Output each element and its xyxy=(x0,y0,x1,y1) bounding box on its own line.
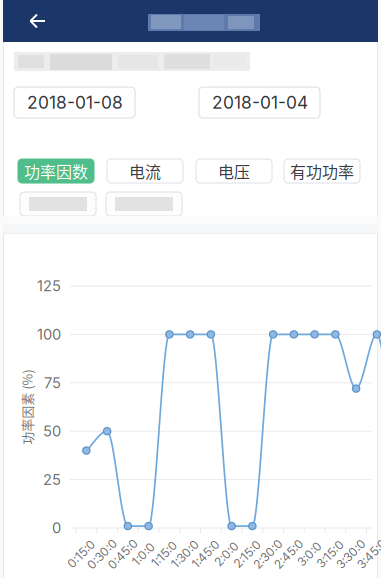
staticText: 功率因数 xyxy=(24,159,88,183)
staticText: 50 xyxy=(43,422,61,440)
staticText: 2018-01-04 xyxy=(212,92,308,113)
button[interactable]: 有功功率 xyxy=(284,159,360,183)
staticText: 0 xyxy=(52,519,61,537)
staticText: 125 xyxy=(37,277,61,295)
button[interactable]: Filter xyxy=(106,192,182,216)
staticText: 3:45:0 xyxy=(354,547,381,561)
staticText: 1:0:0 xyxy=(130,547,157,561)
button[interactable]: 功率因数 xyxy=(18,159,94,183)
button[interactable]: 电流 xyxy=(107,159,183,183)
button[interactable]: 2018-01-08 xyxy=(14,87,135,118)
button[interactable]: Back xyxy=(17,0,59,42)
staticText: 75 xyxy=(44,374,61,392)
button[interactable]: Filter xyxy=(20,192,96,216)
staticText: 1:30:0 xyxy=(168,547,202,561)
staticText: 1:15:0 xyxy=(149,547,180,561)
staticText: 0:45:0 xyxy=(104,547,141,561)
staticText: 2:0:0 xyxy=(212,547,241,561)
staticText: 功率因素 (%) xyxy=(0,398,64,416)
staticText: 3:15:0 xyxy=(314,547,347,561)
staticText: 1:45:0 xyxy=(189,547,223,561)
staticText: 3:30:0 xyxy=(333,547,369,561)
staticText: 0:15:0 xyxy=(64,547,98,561)
staticText: 2:30:0 xyxy=(250,547,286,561)
button[interactable]: 2018-01-04 xyxy=(199,87,320,118)
staticText: 2018-01-08 xyxy=(27,92,123,113)
staticText: 电流 xyxy=(129,159,161,183)
staticText: 电压 xyxy=(218,159,250,183)
staticText: 0:30:0 xyxy=(84,547,121,561)
button[interactable]: 电压 xyxy=(196,159,272,183)
staticText: 25 xyxy=(43,471,61,488)
staticText: 有功功率 xyxy=(290,159,354,183)
staticText: 3:0:0 xyxy=(295,547,324,561)
staticText: 4:0:0 xyxy=(378,547,381,561)
staticText: 100 xyxy=(37,325,61,343)
staticText: 2:45:0 xyxy=(271,547,307,561)
staticText: 2:15:0 xyxy=(231,547,264,561)
